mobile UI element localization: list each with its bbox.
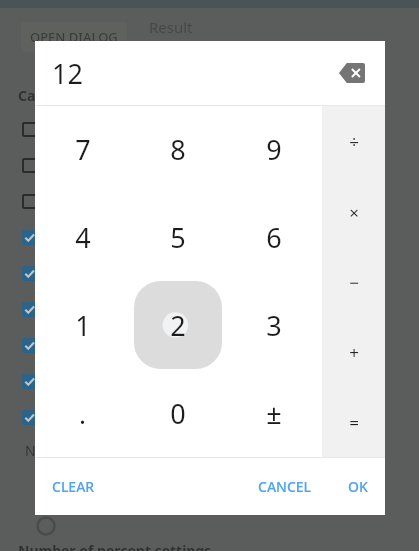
- button[interactable]: Backspace: [334, 55, 370, 91]
- button[interactable]: Unchecked item: [22, 158, 37, 173]
- button[interactable]: 2: [130, 281, 226, 369]
- button[interactable]: 1: [35, 281, 130, 369]
- button[interactable]: 0: [130, 369, 226, 457]
- staticText: ±: [266, 395, 282, 432]
- button[interactable]: Checked item: [22, 410, 37, 425]
- staticText: Result: [149, 17, 193, 37]
- staticText: N: [25, 441, 36, 460]
- button[interactable]: OK: [337, 468, 379, 505]
- staticText: =: [349, 411, 359, 434]
- button[interactable]: Checked item: [22, 230, 37, 245]
- staticText: Ca: [18, 86, 36, 105]
- button[interactable]: 5: [130, 193, 226, 281]
- staticText: ×: [349, 201, 359, 224]
- staticText: 5: [170, 219, 186, 256]
- button[interactable]: =: [322, 387, 385, 457]
- button[interactable]: Checked item: [22, 374, 37, 389]
- staticText: OK: [348, 477, 368, 496]
- button[interactable]: ÷: [322, 106, 385, 177]
- button[interactable]: .: [35, 369, 130, 457]
- staticText: 7: [75, 131, 91, 168]
- button[interactable]: 3: [226, 281, 322, 369]
- button[interactable]: Checked item: [22, 302, 37, 317]
- staticText: +: [349, 341, 359, 364]
- staticText: 1: [75, 307, 91, 344]
- button[interactable]: Checked item: [22, 266, 37, 281]
- button[interactable]: 9: [226, 106, 322, 193]
- staticText: −: [349, 271, 359, 294]
- button[interactable]: CANCEL: [247, 468, 323, 505]
- button[interactable]: ×: [322, 177, 385, 247]
- button[interactable]: CLEAR: [41, 468, 106, 505]
- button[interactable]: +: [322, 317, 385, 387]
- staticText: 12: [52, 55, 83, 92]
- staticText: 0: [170, 395, 186, 432]
- button[interactable]: 4: [35, 193, 130, 281]
- staticText: Number of percent settings: [18, 541, 212, 551]
- button[interactable]: Unchecked item: [22, 122, 37, 137]
- button[interactable]: Checked item: [22, 338, 37, 353]
- staticText: 9: [266, 131, 282, 168]
- staticText: 2: [170, 307, 186, 344]
- staticText: 3: [266, 307, 282, 344]
- button[interactable]: ±: [226, 369, 322, 457]
- staticText: ÷: [349, 130, 359, 153]
- button[interactable]: 7: [35, 106, 130, 193]
- staticText: OPEN DIALOG: [30, 28, 118, 46]
- staticText: 8: [170, 131, 186, 168]
- staticText: CLEAR: [52, 477, 95, 496]
- button[interactable]: Unchecked item: [22, 194, 37, 209]
- staticText: .: [79, 396, 86, 431]
- staticText: 6: [266, 219, 282, 256]
- button[interactable]: 8: [130, 106, 226, 193]
- button[interactable]: OPEN DIALOG: [21, 22, 127, 52]
- button[interactable]: 6: [226, 193, 322, 281]
- staticText: 4: [75, 219, 91, 256]
- button[interactable]: −: [322, 247, 385, 317]
- staticText: CANCEL: [258, 477, 312, 496]
